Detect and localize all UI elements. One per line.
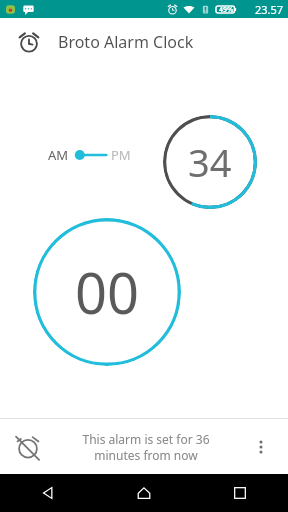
- button[interactable]: Back: [0, 474, 96, 512]
- staticText: 00: [75, 254, 140, 330]
- staticText: 23.57: [255, 2, 284, 17]
- staticText: 49%: [219, 5, 234, 15]
- staticText: PM: [111, 146, 131, 164]
- staticText: AM: [48, 146, 69, 164]
- button[interactable]: Home: [96, 474, 192, 512]
- button[interactable]: 34: [163, 115, 257, 209]
- button[interactable]: Recent apps: [192, 474, 288, 512]
- staticText: Broto Alarm Clock: [58, 31, 194, 53]
- button[interactable]: Alarm: [12, 25, 46, 59]
- staticText: This alarm is set for 36 minutes from no…: [82, 431, 210, 463]
- button[interactable]: 00: [33, 218, 181, 366]
- staticText: 34: [188, 136, 232, 188]
- button[interactable]: Alarm off: [8, 427, 48, 467]
- button[interactable]: AM: [48, 146, 131, 164]
- button[interactable]: More options: [244, 430, 278, 464]
